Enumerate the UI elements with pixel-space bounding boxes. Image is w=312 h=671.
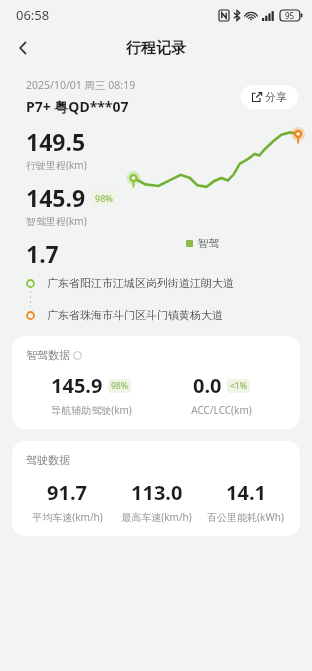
staticText: 行驶里程(km) — [26, 158, 87, 172]
staticText: 149.5 — [26, 126, 86, 157]
staticText: 最高车速(km/h) — [121, 510, 192, 524]
staticText: ACC/LCC(km) — [191, 403, 252, 417]
staticText: 2025/10/01 周三 08:19 — [26, 78, 136, 92]
staticText: 145.9 — [51, 372, 103, 399]
staticText: 百公里能耗(kWh) — [207, 510, 284, 524]
staticText: 智驾数据 — [26, 348, 70, 362]
staticText: 113.0 — [131, 479, 183, 506]
staticText: 98% — [95, 192, 113, 204]
button[interactable]: 驾驶数据 — [12, 441, 300, 536]
staticText: 95 — [285, 10, 295, 21]
staticText: 145.9 — [26, 182, 86, 213]
staticText: 14.1 — [226, 479, 266, 506]
staticText: 导航辅助驾驶(km) — [51, 403, 132, 417]
staticText: 平均车速(km/h) — [32, 510, 103, 524]
staticText: 广东省珠海市斗门区斗门镇黄杨大道 — [47, 308, 223, 322]
staticText: 智驾 — [198, 237, 219, 250]
staticText: P7+ 粤QD***07 — [26, 97, 129, 116]
staticText: 91.7 — [47, 479, 87, 506]
staticText: 98% — [111, 380, 128, 392]
staticText: 1.7 — [26, 238, 59, 268]
button[interactable]: 分享 — [241, 85, 298, 109]
staticText: 分享 — [265, 90, 287, 104]
staticText: 0.0 — [193, 372, 222, 399]
button[interactable]: 智驾数据 — [12, 336, 300, 429]
button[interactable]: Back — [6, 31, 40, 65]
staticText: 06:58 — [16, 6, 50, 24]
staticText: 行程记录 — [126, 39, 186, 58]
staticText: 广东省阳江市江城区岗列街道江朗大道 — [47, 276, 234, 290]
staticText: 智驾里程(km) — [26, 214, 87, 228]
staticText: 驾驶数据 — [26, 453, 70, 467]
staticText: <1% — [230, 380, 247, 392]
